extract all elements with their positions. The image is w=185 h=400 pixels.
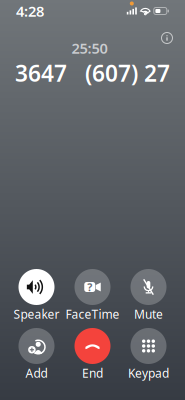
button[interactable]: End <box>68 328 116 382</box>
button[interactable]: Call info <box>155 36 179 60</box>
staticText: 25:50 <box>71 38 107 58</box>
staticText: Speaker <box>13 306 59 322</box>
button[interactable]: Keypad <box>124 328 172 382</box>
button[interactable]: ? <box>68 269 116 323</box>
staticText: Keypad <box>128 365 169 381</box>
staticText: End <box>82 365 103 381</box>
staticText: 4:28 <box>16 1 44 21</box>
staticText: ? <box>87 280 92 294</box>
staticText: Mute <box>134 306 163 322</box>
button[interactable]: Mute <box>124 269 172 323</box>
staticText: 3647 (607) 27 <box>15 58 170 88</box>
button[interactable]: Speaker <box>12 269 60 323</box>
staticText: FaceTime <box>65 306 119 322</box>
button[interactable]: Add <box>12 328 60 382</box>
staticText: Add <box>25 365 47 381</box>
